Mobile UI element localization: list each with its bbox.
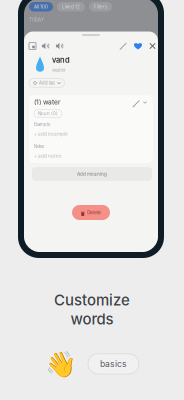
button[interactable]: Play pronunciation <box>42 42 50 49</box>
staticText: Noun (0) <box>38 111 58 116</box>
button[interactable]: + add notes <box>34 153 62 159</box>
staticText: + add notes <box>34 153 62 159</box>
staticText: Filters <box>94 4 107 9</box>
button[interactable]: Add meaning <box>32 167 152 181</box>
button[interactable]: Close <box>149 42 156 49</box>
button[interactable]: Edit meaning <box>133 100 138 105</box>
button[interactable]: Add tag <box>29 78 64 87</box>
button[interactable]: + add example <box>34 131 68 137</box>
staticText: Add meaning <box>77 171 107 177</box>
button[interactable]: Play slowly <box>56 42 64 49</box>
button[interactable]: Flashcard <box>29 42 36 49</box>
staticText: Delete <box>87 210 101 215</box>
staticText: Example <box>34 122 50 127</box>
staticText: + add example <box>34 131 68 137</box>
staticText: basics <box>100 359 127 369</box>
button[interactable]: Collapse <box>143 101 148 104</box>
staticText: vand <box>52 55 70 64</box>
staticText: Add tag <box>39 80 55 85</box>
button[interactable]: basics <box>88 354 139 374</box>
button[interactable]: Edit <box>120 42 127 49</box>
staticText: (1) water <box>34 98 61 106</box>
staticText: Liked 12 <box>62 4 80 9</box>
staticText: water <box>52 66 66 73</box>
staticText: TODAY <box>29 17 44 22</box>
staticText: 👋 <box>45 349 77 379</box>
staticText: All 100 <box>34 4 48 9</box>
staticText: words <box>70 310 113 328</box>
button[interactable]: Delete <box>72 205 110 220</box>
staticText: Customize <box>54 291 130 309</box>
staticText: Notes <box>34 144 44 149</box>
button[interactable]: Favourite <box>134 42 142 49</box>
